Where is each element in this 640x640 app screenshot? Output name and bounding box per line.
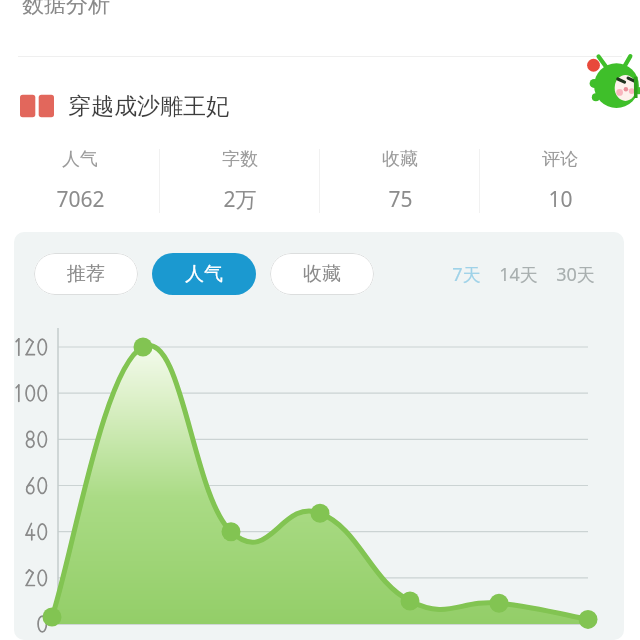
button[interactable]: 评论 (480, 140, 640, 222)
staticText: 评论 (542, 148, 578, 171)
button[interactable]: 字数 (160, 140, 320, 222)
button[interactable]: 7天 (449, 257, 484, 292)
staticText: 7062 (56, 185, 105, 214)
staticText: 75 (388, 185, 413, 214)
button[interactable]: 30天 (553, 257, 598, 292)
button[interactable]: 收藏 (270, 253, 374, 295)
staticText: 人气 (62, 148, 98, 171)
staticText: 字数 (222, 148, 258, 171)
staticText: 数据分析 (22, 0, 110, 19)
staticText: 穿越成沙雕王妃 (68, 92, 229, 121)
staticText: 10 (548, 185, 573, 214)
staticText: 2万 (223, 185, 257, 214)
staticText: 推荐 (67, 262, 105, 286)
staticText: 7天 (452, 262, 481, 287)
button[interactable]: Mascot avatar (584, 46, 640, 110)
button[interactable]: 推荐 (34, 253, 138, 295)
button[interactable]: 穿越成沙雕王妃 (0, 85, 640, 127)
button[interactable]: 14天 (496, 257, 541, 292)
button[interactable]: 收藏 (320, 140, 480, 222)
button[interactable]: 人气 (152, 253, 256, 295)
staticText: 收藏 (382, 148, 418, 171)
button[interactable]: 人气 (0, 140, 160, 222)
staticText: 人气 (185, 262, 223, 286)
staticText: 30天 (556, 262, 595, 287)
staticText: 14天 (499, 262, 538, 287)
staticText: 收藏 (303, 262, 341, 286)
